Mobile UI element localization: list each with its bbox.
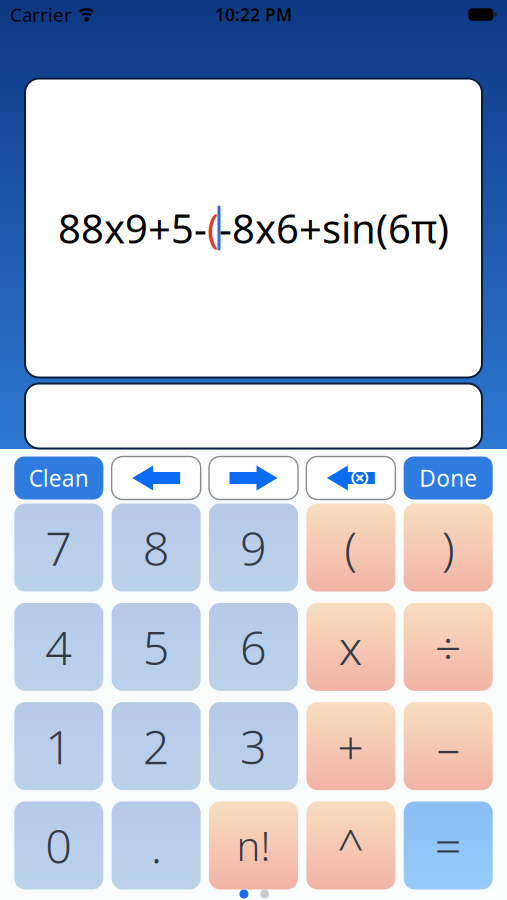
staticText: Clean bbox=[29, 463, 89, 493]
staticText: 4 bbox=[45, 616, 72, 678]
button[interactable]: . bbox=[112, 801, 201, 889]
staticText: = bbox=[435, 814, 462, 876]
staticText: 3 bbox=[240, 715, 267, 777]
staticText: n! bbox=[236, 819, 270, 872]
staticText: x bbox=[339, 616, 363, 678]
button[interactable]: 0 bbox=[14, 801, 103, 889]
staticText: ) bbox=[442, 517, 455, 579]
staticText: ( bbox=[207, 201, 219, 254]
staticText: 8 bbox=[143, 517, 170, 579]
button[interactable]: 3 bbox=[209, 702, 298, 790]
staticText: Done bbox=[419, 463, 477, 493]
staticText: ( bbox=[344, 517, 357, 579]
staticText: 2 bbox=[143, 715, 170, 777]
button[interactable]: ÷ bbox=[404, 603, 493, 691]
button[interactable]: 8 bbox=[112, 504, 201, 592]
button[interactable] bbox=[239, 889, 269, 898]
button[interactable] bbox=[209, 456, 298, 499]
staticText: . bbox=[151, 814, 162, 876]
button[interactable]: 5 bbox=[112, 603, 201, 691]
staticText: ÷ bbox=[435, 616, 462, 678]
staticText: 9 bbox=[240, 517, 267, 579]
button[interactable]: 1 bbox=[14, 702, 103, 790]
button[interactable]: ^ bbox=[306, 801, 395, 889]
button[interactable]: ( bbox=[306, 504, 395, 592]
button[interactable]: x bbox=[306, 603, 395, 691]
button[interactable] bbox=[306, 456, 395, 499]
staticText: 10:22 PM bbox=[215, 3, 292, 26]
staticText: 0 bbox=[45, 814, 72, 876]
button[interactable]: 7 bbox=[14, 504, 103, 592]
button[interactable]: – bbox=[404, 702, 493, 790]
button[interactable]: n! bbox=[209, 801, 298, 889]
staticText: – bbox=[437, 715, 460, 777]
button[interactable] bbox=[112, 456, 201, 499]
button[interactable]: ) bbox=[404, 504, 493, 592]
button[interactable]: Clean bbox=[14, 456, 103, 499]
staticText: 88x9+5- bbox=[58, 201, 207, 254]
staticText: 5 bbox=[143, 616, 170, 678]
staticText: 7 bbox=[45, 517, 72, 579]
staticText: -8x6+sin(6π) bbox=[219, 201, 449, 254]
button[interactable]: Done bbox=[404, 456, 493, 499]
staticText: 6 bbox=[240, 616, 267, 678]
staticText: Carrier bbox=[10, 2, 72, 27]
button[interactable]: 4 bbox=[14, 603, 103, 691]
button[interactable]: 9 bbox=[209, 504, 298, 592]
staticText: ^ bbox=[337, 814, 364, 876]
button[interactable]: = bbox=[404, 801, 493, 889]
button[interactable]: 2 bbox=[112, 702, 201, 790]
staticText: 1 bbox=[45, 715, 72, 777]
button[interactable]: 6 bbox=[209, 603, 298, 691]
staticText: + bbox=[337, 715, 364, 777]
button[interactable]: + bbox=[306, 702, 395, 790]
